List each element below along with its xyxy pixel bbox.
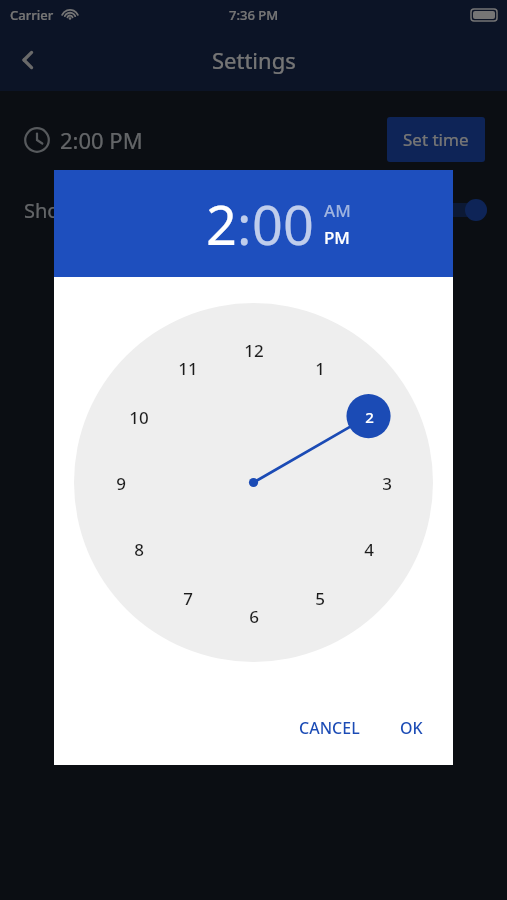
button[interactable]: PM: [324, 226, 350, 249]
staticText: 8: [134, 538, 144, 561]
staticText: 7:36 PM: [229, 6, 279, 24]
staticText: Show notification: [24, 197, 187, 224]
button[interactable]: Show notification toggle: [435, 194, 487, 226]
staticText: CANCEL: [299, 717, 360, 739]
button[interactable]: 9: [104, 466, 138, 500]
button[interactable]: 2: [206, 187, 237, 261]
button[interactable]: Set time: [387, 117, 485, 162]
staticText: 10: [129, 406, 149, 429]
staticText: 4: [364, 538, 374, 561]
button[interactable]: 12: [237, 333, 271, 367]
button[interactable]: 00: [252, 187, 314, 261]
button[interactable]: OK: [388, 709, 435, 747]
staticText: 7: [183, 587, 193, 610]
staticText: Set time: [403, 128, 469, 151]
button[interactable]: 7: [171, 581, 205, 615]
staticText: Carrier: [10, 6, 54, 24]
button[interactable]: 8: [122, 532, 156, 566]
staticText: 3: [382, 472, 392, 495]
button[interactable]: AM: [324, 199, 351, 222]
staticText: 11: [178, 357, 198, 380]
staticText: :: [237, 187, 252, 261]
button[interactable]: 10: [122, 400, 156, 434]
button[interactable]: 5: [303, 581, 337, 615]
button[interactable]: 11: [171, 351, 205, 385]
button[interactable]: 6: [237, 599, 271, 633]
staticText: 2: [365, 407, 374, 427]
button[interactable]: 3: [370, 466, 404, 500]
staticText: 9: [116, 472, 126, 495]
button[interactable]: CANCEL: [287, 709, 372, 747]
staticText: 5: [315, 587, 325, 610]
button[interactable]: Back: [0, 32, 56, 88]
button[interactable]: 2: [352, 400, 386, 434]
staticText: Settings: [212, 45, 296, 75]
staticText: 12: [244, 339, 264, 362]
staticText: 1: [315, 357, 325, 380]
staticText: 2:00 PM: [60, 125, 143, 155]
staticText: OK: [400, 717, 423, 739]
button[interactable]: 1: [303, 351, 337, 385]
staticText: 6: [249, 605, 259, 628]
button[interactable]: 4: [352, 532, 386, 566]
